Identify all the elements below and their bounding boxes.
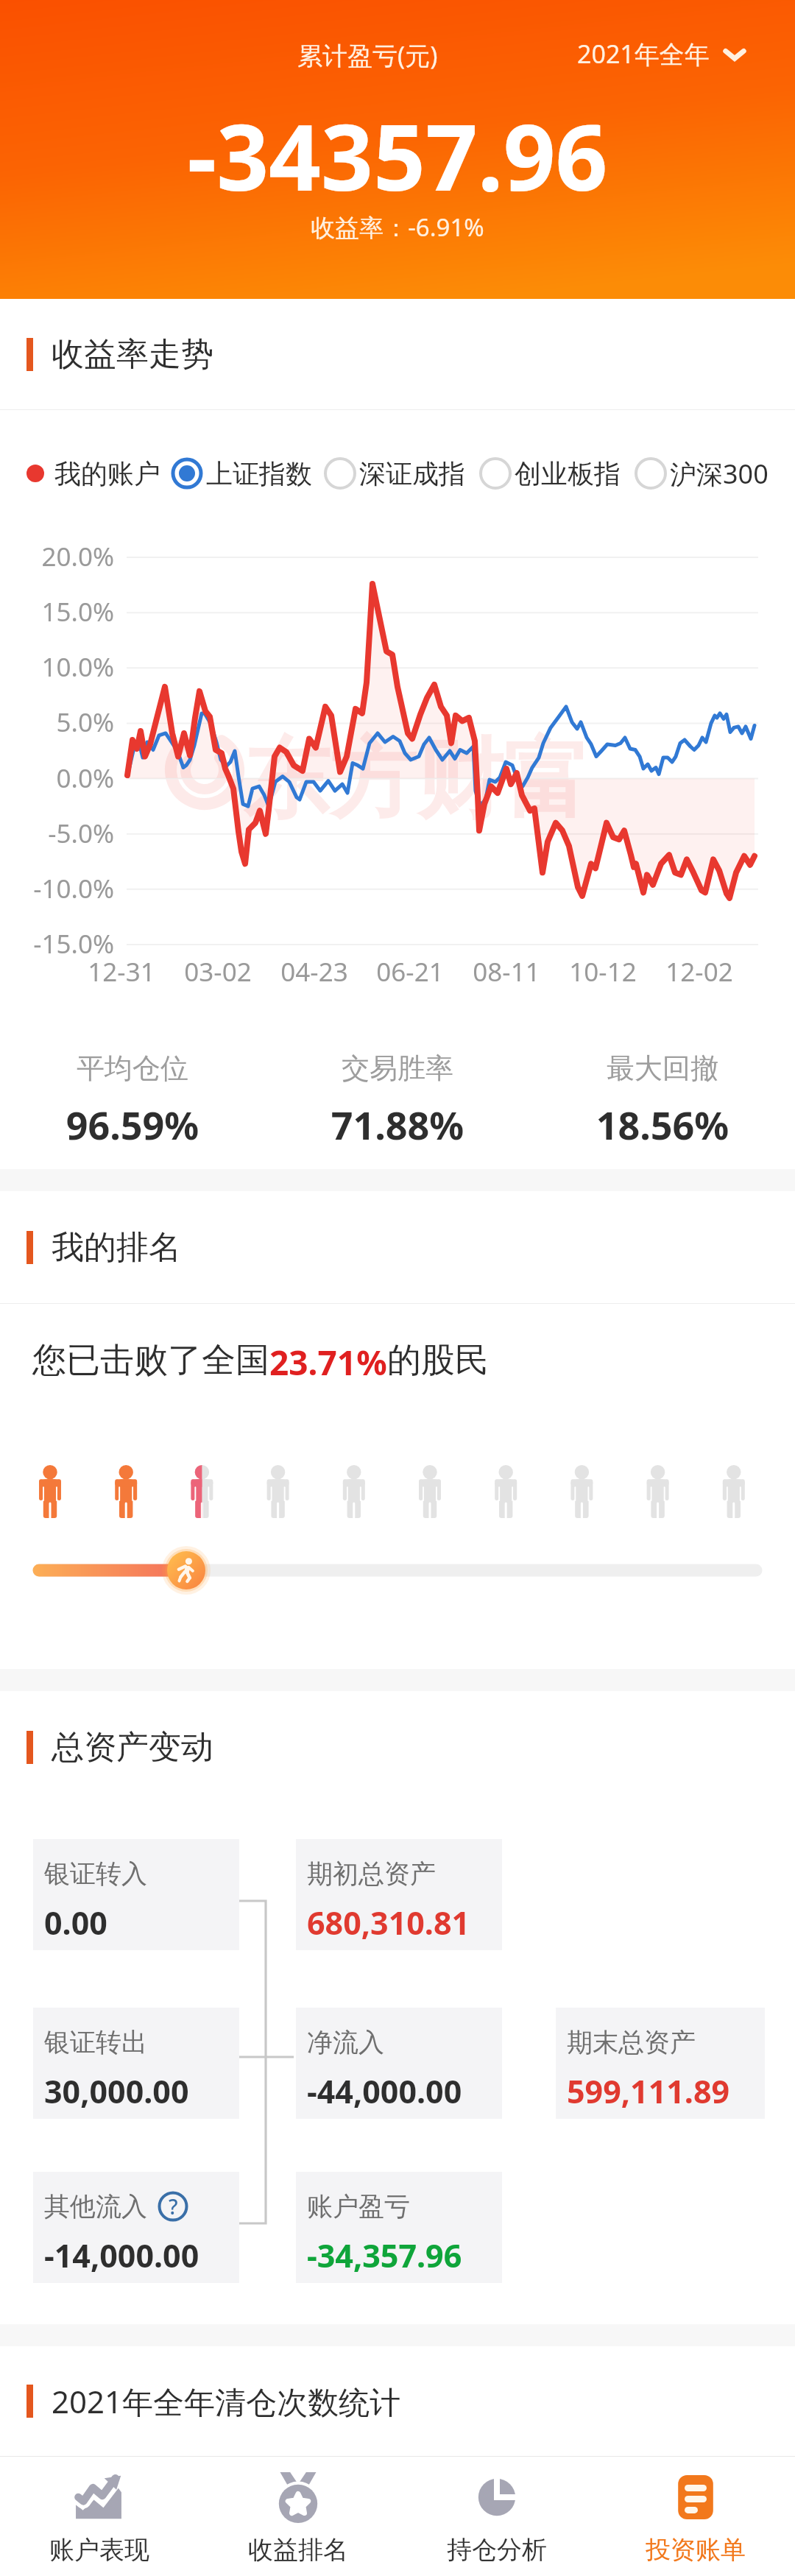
- staticText: 交易胜率: [265, 1051, 530, 1086]
- staticText: 71.88%: [265, 1098, 530, 1151]
- staticText: 0.00: [44, 1901, 107, 1944]
- button[interactable]: 账户盈亏: [296, 2172, 502, 2283]
- staticText: 23.71%: [269, 1339, 387, 1386]
- button[interactable]: 2021年全年: [577, 37, 748, 71]
- staticText: 银证转入: [44, 1857, 147, 1890]
- staticText: -15.0%: [0, 926, 114, 961]
- staticText: 04-23: [263, 954, 366, 989]
- button[interactable]: 我的排名: [0, 1191, 795, 1303]
- button[interactable]: 创业板指: [476, 446, 621, 501]
- staticText: 20.0%: [0, 539, 114, 574]
- staticText: -14,000.00: [44, 2234, 199, 2277]
- staticText: 2021年全年: [577, 37, 710, 71]
- staticText: 06-21: [358, 954, 462, 989]
- staticText: 收益排名: [248, 2534, 348, 2566]
- button[interactable]: 我的账户: [16, 446, 160, 501]
- other: 选择时间区间: [721, 40, 748, 67]
- staticText: -34357.96: [0, 93, 795, 217]
- staticText: 10-12: [551, 954, 654, 989]
- staticText: 东方财富: [243, 725, 590, 835]
- staticText: 08-11: [455, 954, 558, 989]
- staticText: 30,000.00: [44, 2069, 189, 2113]
- button[interactable]: 投资账单: [596, 2456, 795, 2576]
- staticText: 12-02: [648, 954, 751, 989]
- staticText: 18.56%: [530, 1098, 795, 1151]
- staticText: -5.0%: [0, 816, 114, 851]
- staticText: 的股民: [387, 1339, 489, 1382]
- staticText: 10.0%: [0, 649, 114, 685]
- staticText: 银证转出: [44, 2026, 147, 2058]
- staticText: -44,000.00: [307, 2069, 462, 2113]
- staticText: 账户盈亏: [307, 2190, 410, 2223]
- staticText: 96.59%: [0, 1098, 265, 1151]
- staticText: 期末总资产: [567, 2026, 696, 2058]
- staticText: 2021年全年清仓次数统计: [52, 2380, 401, 2422]
- staticText: 03-02: [166, 954, 269, 989]
- button[interactable]: 期初总资产: [296, 1839, 502, 1950]
- staticText: ?: [169, 2192, 178, 2220]
- staticText: 680,310.81: [307, 1901, 470, 1944]
- staticText: 持仓分析: [447, 2534, 547, 2566]
- staticText: 深证成指: [359, 457, 465, 490]
- staticText: 总资产变动: [52, 1727, 213, 1768]
- button[interactable]: 深证成指: [321, 446, 465, 501]
- staticText: 累计盈亏(元): [297, 38, 438, 72]
- button[interactable]: 收益排名: [199, 2456, 397, 2576]
- button[interactable]: 银证转入: [33, 1839, 239, 1950]
- staticText: 15.0%: [0, 594, 114, 629]
- button[interactable]: 沪深300: [632, 446, 768, 501]
- staticText: 投资账单: [646, 2534, 746, 2566]
- button[interactable]: 期末总资产: [556, 2008, 765, 2119]
- staticText: 平均仓位: [0, 1051, 265, 1086]
- button[interactable]: 上证指数: [168, 446, 312, 501]
- staticText: -34,357.96: [307, 2234, 462, 2277]
- staticText: 5.0%: [0, 705, 114, 740]
- button[interactable]: 银证转出: [33, 2008, 239, 2119]
- staticText: -10.0%: [0, 871, 114, 906]
- staticText: 599,111.89: [567, 2069, 730, 2113]
- button[interactable]: 净流入: [296, 2008, 502, 2119]
- staticText: 0.0%: [0, 761, 114, 796]
- staticText: 最大回撤: [530, 1051, 795, 1086]
- staticText: 上证指数: [206, 457, 312, 490]
- button[interactable]: 账户表现: [0, 2456, 199, 2576]
- staticText: 其他流入: [44, 2190, 147, 2223]
- button[interactable]: 持仓分析: [397, 2456, 596, 2576]
- other: 说明: [158, 2191, 188, 2222]
- staticText: 我的账户: [54, 457, 160, 490]
- staticText: 收益率走势: [52, 334, 213, 375]
- staticText: 您已击败了全国: [32, 1339, 269, 1382]
- staticText: 12-31: [70, 954, 173, 989]
- button[interactable]: 其他流入: [33, 2172, 239, 2283]
- staticText: 账户表现: [49, 2534, 149, 2566]
- button[interactable]: 收益率走势: [0, 299, 795, 409]
- staticText: 净流入: [307, 2026, 384, 2058]
- staticText: 创业板指: [515, 457, 621, 490]
- staticText: 沪深300: [670, 456, 768, 492]
- button[interactable]: 2021年全年清仓次数统计: [0, 2346, 795, 2456]
- staticText: 期初总资产: [307, 1857, 436, 1890]
- button[interactable]: 总资产变动: [0, 1691, 795, 1803]
- staticText: 我的排名: [52, 1227, 181, 1268]
- staticText: 收益率：-6.91%: [0, 211, 795, 244]
